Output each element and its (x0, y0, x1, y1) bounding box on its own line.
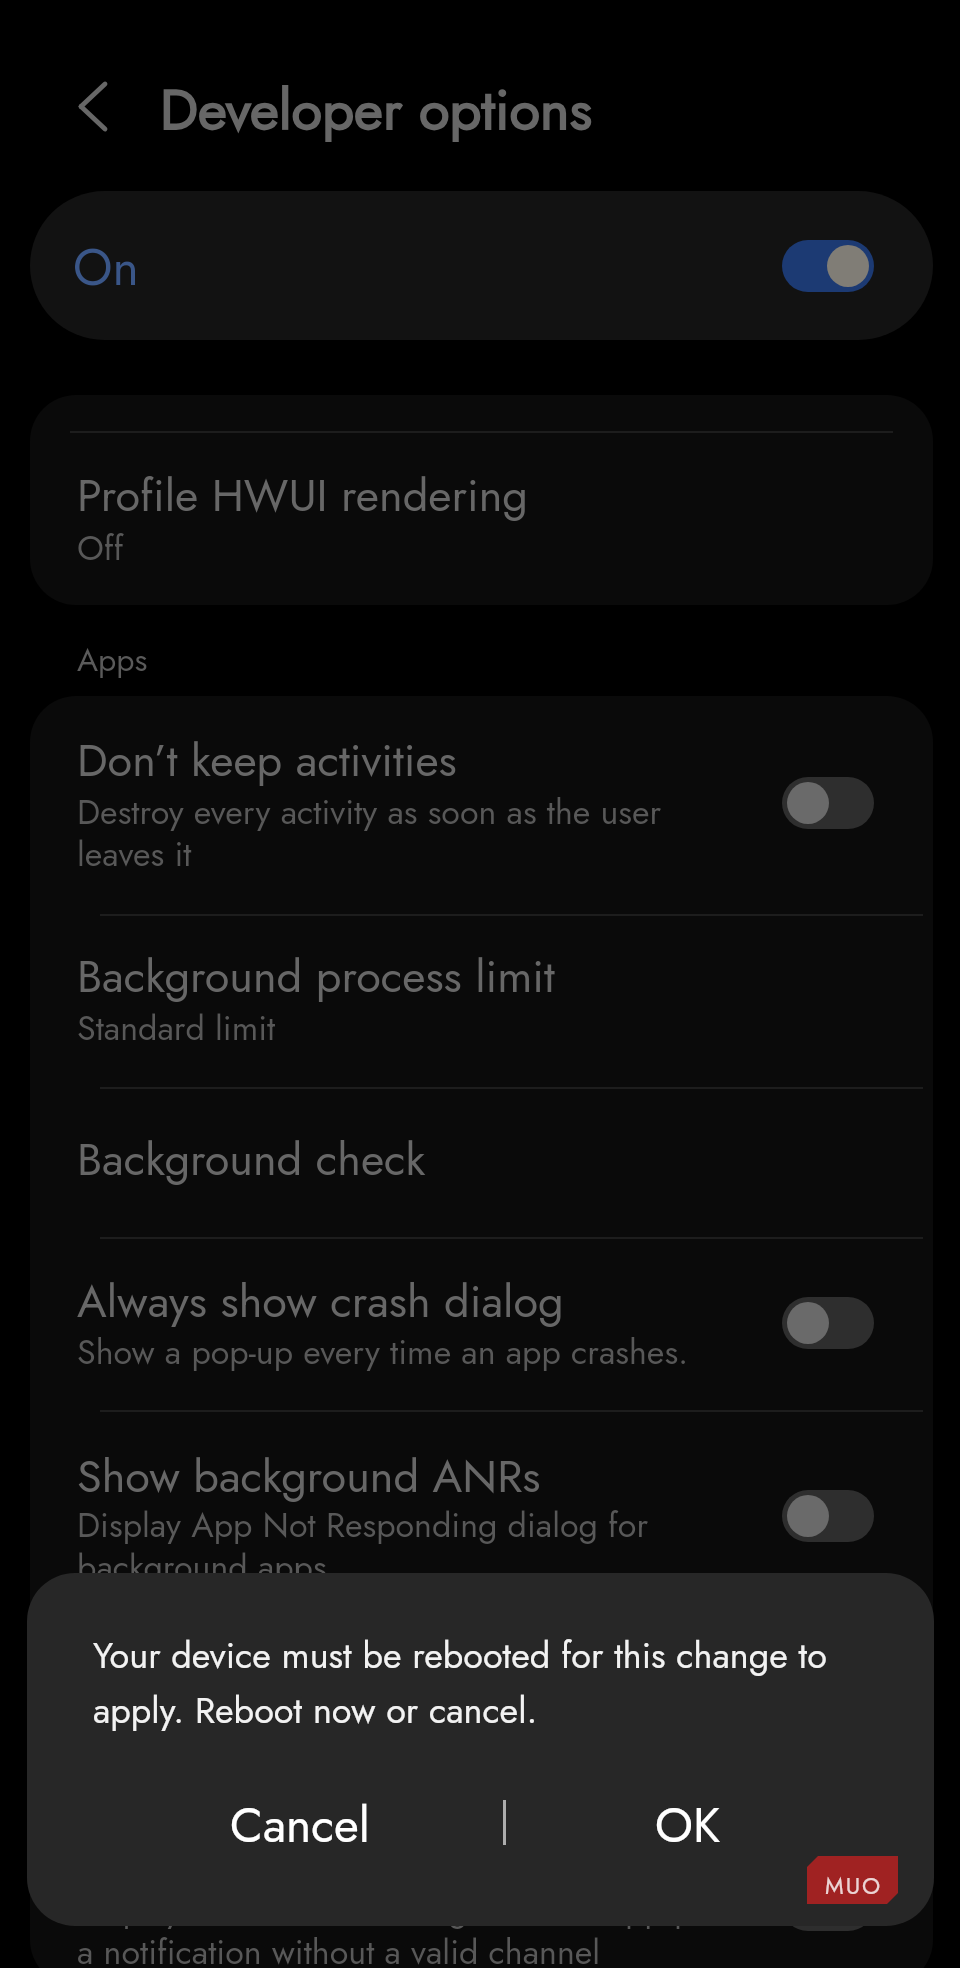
button[interactable]: Switch off (782, 1297, 874, 1349)
button[interactable]: Switch on (782, 240, 874, 292)
button[interactable]: Show background ANRs (30, 1410, 933, 1622)
button[interactable]: Switch off (782, 777, 874, 829)
button[interactable]: Switch off (782, 1490, 874, 1542)
button[interactable]: Back (58, 62, 146, 150)
staticText: Developer options (160, 69, 592, 150)
button[interactable]: Background process limit (30, 914, 933, 1087)
staticText: Background process limit (77, 944, 555, 1009)
button[interactable]: Background check (30, 1087, 933, 1237)
button[interactable]: Don’t keep activities (30, 696, 933, 914)
staticText: Show a pop-up every time an app crashes. (77, 1328, 757, 1377)
staticText: Displays on-screen warning when an app p… (77, 1886, 757, 1968)
staticText: OK (655, 1791, 721, 1860)
staticText: Show background ANRs (77, 1444, 541, 1509)
staticText: Profile HWUI rendering (77, 463, 528, 528)
staticText: Off (77, 524, 124, 573)
staticText: Destroy every activity as soon as the us… (77, 788, 677, 879)
button[interactable]: Show notification channel warnings (30, 1622, 933, 1912)
staticText: Don’t keep activities (77, 728, 457, 793)
staticText: Cancel (230, 1791, 370, 1860)
staticText: Background check (77, 1127, 426, 1192)
staticText: Show notification channel warnings (77, 1826, 748, 1891)
staticText: Standard limit (77, 1004, 677, 1053)
button[interactable]: OK (530, 1790, 880, 1866)
staticText: Always show crash dialog (77, 1269, 564, 1334)
button[interactable]: On (30, 191, 933, 340)
button[interactable]: Cancel (57, 1790, 477, 1866)
staticText: MUO (825, 1869, 883, 1902)
staticText: Display App Not Responding dialog for ba… (77, 1501, 657, 1592)
button[interactable]: Always show crash dialog (30, 1237, 933, 1410)
button[interactable]: Switch off (782, 1879, 874, 1931)
staticText: Your device must be rebooted for this ch… (93, 1629, 863, 1737)
staticText: Apps (77, 637, 148, 683)
button[interactable]: Profile HWUI rendering (30, 433, 933, 605)
staticText: On (73, 231, 139, 303)
